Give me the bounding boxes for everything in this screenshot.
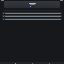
button[interactable] <box>2 15 62 17</box>
button[interactable] <box>2 12 62 14</box>
button[interactable]: Search <box>30 62 34 64</box>
button[interactable]: Home <box>13 62 17 64</box>
button[interactable] <box>2 18 62 20</box>
button[interactable]: Status <box>4 1 60 8</box>
button[interactable]: Profile <box>47 62 51 64</box>
